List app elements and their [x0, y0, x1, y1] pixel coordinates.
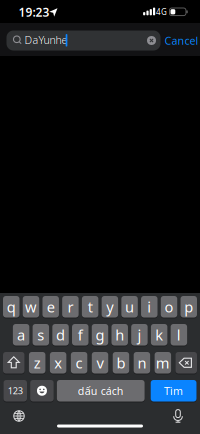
staticText: l — [177, 325, 181, 344]
button[interactable]: 123 — [3, 380, 27, 401]
button[interactable]: n — [134, 352, 150, 373]
staticText: o — [164, 297, 173, 316]
button[interactable]: c — [71, 352, 87, 373]
staticText: p — [184, 297, 193, 316]
button[interactable]: x — [50, 352, 66, 373]
button[interactable]: k — [151, 324, 167, 345]
staticText: s — [37, 325, 44, 344]
staticText: g — [95, 325, 104, 344]
button[interactable]: b — [113, 352, 129, 373]
staticText: e — [47, 297, 55, 316]
button[interactable]: v — [92, 352, 108, 373]
staticText: 4G — [156, 6, 167, 17]
staticText: b — [116, 353, 125, 372]
button[interactable]: s — [33, 324, 49, 345]
button[interactable]: u — [121, 296, 138, 317]
button[interactable]: Next keyboard — [13, 410, 25, 422]
button[interactable]: q — [3, 296, 19, 317]
staticText: h — [115, 325, 124, 344]
staticText: n — [137, 353, 146, 372]
staticText: t — [88, 297, 93, 316]
button[interactable]: p — [180, 296, 197, 317]
button[interactable]: z — [29, 352, 45, 373]
button[interactable]: l — [171, 324, 187, 345]
button[interactable]: o — [161, 296, 177, 317]
button[interactable]: Shift — [3, 352, 24, 373]
button[interactable]: Search — [6, 30, 160, 50]
button[interactable]: dấu cách — [57, 380, 145, 401]
button[interactable]: Delete — [175, 352, 197, 373]
button[interactable]: a — [13, 324, 29, 345]
button[interactable]: Cancel — [164, 33, 198, 48]
button[interactable]: Emoji — [30, 380, 54, 401]
staticText: y — [106, 297, 113, 316]
staticText: z — [34, 353, 41, 372]
button[interactable]: e — [42, 296, 59, 317]
button[interactable]: y — [102, 296, 118, 317]
staticText: v — [96, 353, 103, 372]
button[interactable]: i — [141, 296, 157, 317]
staticText: Cancel — [164, 33, 198, 48]
staticText: DaYunhe — [24, 33, 67, 47]
button[interactable]: f — [72, 324, 88, 345]
staticText: d — [56, 325, 65, 344]
button[interactable]: r — [62, 296, 79, 317]
button[interactable]: m — [155, 352, 171, 373]
staticText: q — [7, 297, 16, 316]
button[interactable]: d — [52, 324, 69, 345]
button[interactable]: t — [82, 296, 98, 317]
button[interactable]: Tìm — [151, 380, 196, 401]
staticText: w — [25, 297, 37, 316]
staticText: j — [137, 325, 141, 344]
button[interactable]: g — [92, 324, 108, 345]
button[interactable]: j — [131, 324, 148, 345]
staticText: m — [156, 353, 170, 372]
staticText: dấu cách — [78, 384, 124, 398]
staticText: 19:23 — [18, 4, 49, 20]
staticText: i — [147, 297, 151, 316]
staticText: k — [155, 325, 163, 344]
staticText: r — [67, 297, 73, 316]
staticText: x — [54, 353, 62, 372]
staticText: c — [76, 353, 83, 372]
staticText: a — [17, 325, 25, 344]
staticText: u — [125, 297, 134, 316]
button[interactable]: Dictate — [172, 409, 184, 423]
staticText: Tìm — [164, 384, 183, 398]
button[interactable]: w — [23, 296, 39, 317]
staticText: f — [78, 325, 83, 344]
staticText: 123 — [8, 385, 23, 397]
button[interactable]: Clear text — [147, 36, 156, 45]
button[interactable]: h — [111, 324, 128, 345]
